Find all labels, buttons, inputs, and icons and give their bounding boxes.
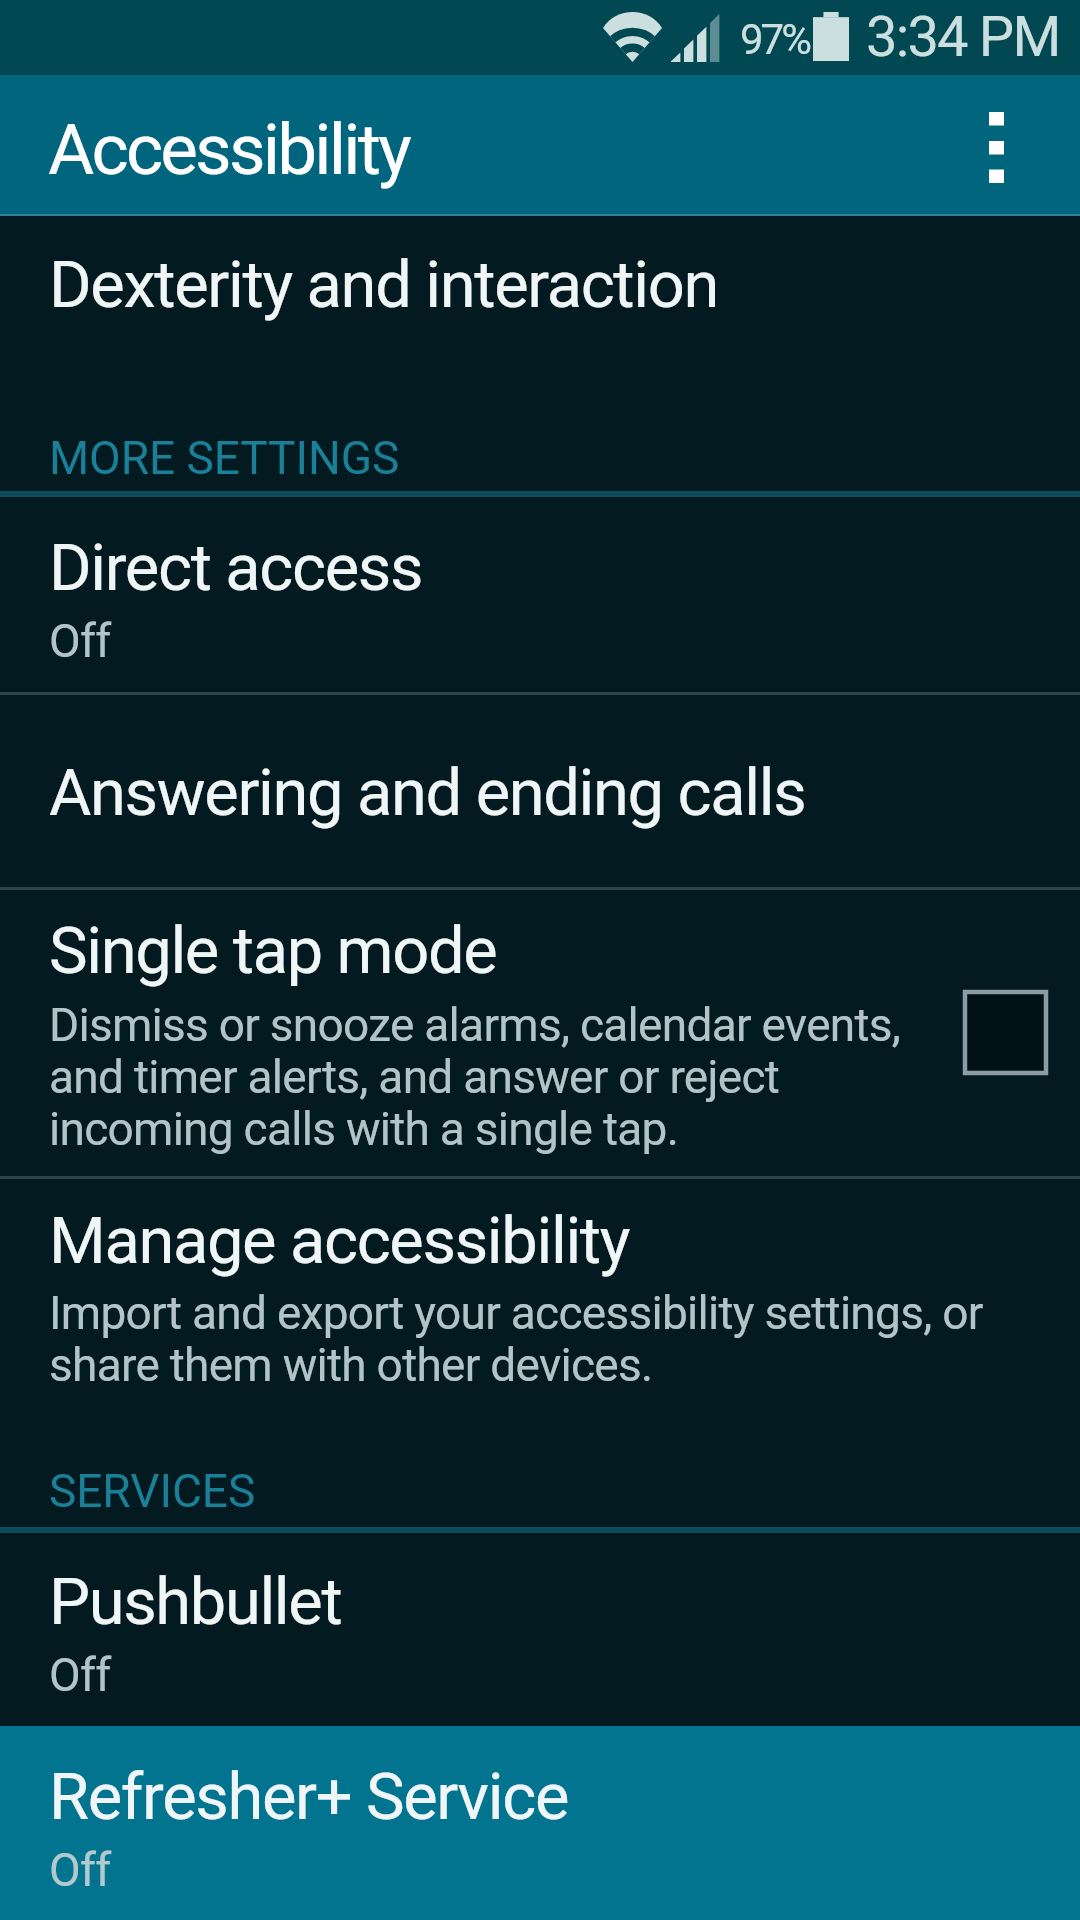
button[interactable]: Manage accessibility bbox=[0, 1179, 1080, 1420]
button[interactable]: More options bbox=[941, 75, 1051, 216]
button[interactable]: Dexterity and interaction bbox=[0, 214, 1080, 400]
button[interactable]: Pushbullet bbox=[0, 1533, 1080, 1726]
button[interactable]: Refresher+ Service bbox=[0, 1726, 1080, 1920]
button[interactable]: Answering and ending calls bbox=[0, 695, 1080, 887]
other: Wi-Fi signal bbox=[603, 12, 662, 62]
other: Battery 97 percent bbox=[813, 12, 849, 61]
staticText: Single tap mode bbox=[49, 913, 497, 989]
staticText: SERVICES bbox=[49, 1464, 256, 1518]
button[interactable]: Single tap mode checkbox, off bbox=[965, 992, 1046, 1073]
staticText: Manage accessibility bbox=[49, 1203, 630, 1279]
button[interactable]: Single tap mode bbox=[0, 890, 1080, 1176]
staticText: Off bbox=[49, 614, 111, 668]
staticText: Answering and ending calls bbox=[49, 755, 806, 831]
staticText: Off bbox=[49, 1648, 111, 1702]
staticText: Direct access bbox=[49, 530, 423, 606]
staticText: Import and export your accessibility set… bbox=[49, 1286, 1049, 1392]
staticText: 97% bbox=[740, 15, 809, 64]
staticText: Dexterity and interaction bbox=[49, 247, 718, 323]
staticText: Refresher+ Service bbox=[49, 1759, 568, 1835]
other: Mobile signal bbox=[671, 14, 723, 62]
staticText: Accessibility bbox=[48, 108, 409, 191]
staticText: Dismiss or snooze alarms, calendar event… bbox=[49, 998, 929, 1156]
button[interactable]: Direct access bbox=[0, 497, 1080, 692]
staticText: MORE SETTINGS bbox=[49, 431, 400, 485]
staticText: Off bbox=[49, 1843, 111, 1897]
staticText: Pushbullet bbox=[49, 1564, 342, 1640]
staticText: 3:34 PM bbox=[866, 4, 1060, 70]
